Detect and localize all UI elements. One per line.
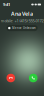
staticText: 9:41 (3, 2, 10, 7)
button[interactable]: Decline call (6, 74, 15, 82)
staticText: Silence Unknown (12, 26, 36, 30)
staticText: mobile +1 (415) 555‑0172 (0, 18, 43, 23)
button[interactable]: Accept call (29, 74, 37, 82)
staticText: Ana Vela (11, 10, 33, 17)
